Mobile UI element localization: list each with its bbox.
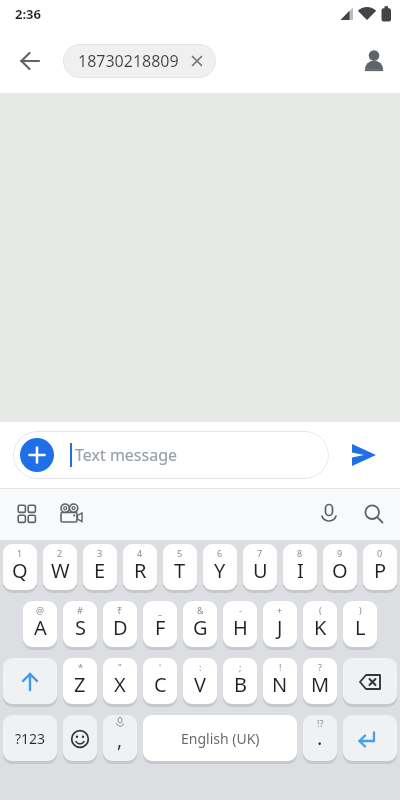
button[interactable] — [350, 441, 378, 469]
staticText: . — [317, 724, 323, 751]
staticText: I — [297, 557, 304, 584]
staticText: * — [78, 661, 83, 673]
button[interactable] — [17, 504, 37, 524]
button[interactable]: 8 — [283, 544, 317, 591]
staticText: 0 — [377, 547, 383, 559]
button[interactable]: # — [63, 601, 97, 648]
staticText: Z — [74, 671, 86, 698]
staticText: O — [332, 557, 348, 584]
button[interactable]: & — [183, 601, 217, 648]
button[interactable]: " — [103, 658, 137, 705]
staticText: ' — [159, 661, 162, 673]
staticText: 3 — [97, 547, 103, 559]
staticText: ) — [359, 604, 362, 616]
staticText: C — [154, 671, 167, 698]
staticText: ; — [239, 661, 242, 673]
staticText: : — [199, 661, 202, 673]
staticText: 7 — [257, 547, 263, 559]
button[interactable]: Text message — [13, 431, 329, 479]
button[interactable] — [363, 503, 385, 525]
staticText: # — [77, 604, 83, 616]
staticText: !? — [317, 717, 324, 729]
button[interactable] — [63, 715, 97, 762]
staticText: Y — [214, 557, 226, 584]
staticText: & — [197, 604, 204, 616]
button[interactable]: , — [103, 715, 137, 762]
button[interactable]: 3 — [83, 544, 117, 591]
staticText: U — [253, 557, 268, 584]
staticText: , — [117, 727, 123, 753]
staticText: P — [374, 557, 387, 584]
staticText: - — [239, 604, 242, 616]
staticText: ?123 — [15, 729, 46, 748]
button[interactable]: - — [223, 601, 257, 648]
button[interactable] — [318, 503, 340, 525]
staticText: G — [193, 614, 208, 641]
staticText: 4 — [137, 547, 143, 559]
button[interactable]: ?123 — [3, 715, 57, 762]
staticText: " — [118, 661, 122, 673]
button[interactable]: 4 — [123, 544, 157, 591]
button[interactable]: ₹ — [103, 601, 137, 648]
staticText: Text message — [75, 444, 178, 466]
staticText: D — [113, 614, 128, 641]
staticText: @ — [36, 604, 45, 616]
button[interactable]: 0 — [363, 544, 397, 591]
button[interactable]: 6 — [203, 544, 237, 591]
button[interactable]: ) — [343, 601, 377, 648]
button[interactable]: ? — [303, 658, 337, 705]
button[interactable]: ( — [303, 601, 337, 648]
staticText: E — [94, 557, 106, 584]
staticText: X — [114, 671, 126, 698]
button[interactable]: 9 — [323, 544, 357, 591]
staticText: English (UK) — [181, 729, 260, 748]
button[interactable]: ' — [143, 658, 177, 705]
button[interactable]: : — [183, 658, 217, 705]
staticText: Q — [12, 557, 28, 584]
button[interactable]: * — [63, 658, 97, 705]
staticText: B — [234, 671, 247, 698]
staticText: 5 — [177, 547, 183, 559]
staticText: ? — [318, 661, 322, 673]
staticText: T — [174, 557, 186, 584]
staticText: ( — [319, 604, 322, 616]
staticText: L — [355, 614, 366, 641]
button[interactable] — [343, 715, 397, 762]
staticText: 9 — [337, 547, 343, 559]
button[interactable]: 5 — [163, 544, 197, 591]
staticText: ! — [279, 661, 282, 673]
staticText: F — [155, 614, 166, 641]
button[interactable]: ; — [223, 658, 257, 705]
staticText: R — [134, 557, 147, 584]
staticText: H — [233, 614, 248, 641]
button[interactable]: 1 — [3, 544, 37, 591]
button[interactable] — [59, 502, 83, 526]
button[interactable] — [343, 658, 397, 705]
button[interactable] — [18, 49, 42, 73]
staticText: 2 — [57, 547, 63, 559]
staticText: 6 — [217, 547, 223, 559]
staticText: S — [75, 614, 86, 641]
button[interactable]: !? — [303, 715, 337, 762]
staticText: 1 — [17, 547, 23, 559]
staticText: + — [277, 604, 283, 616]
button[interactable]: 2 — [43, 544, 77, 591]
button[interactable]: + — [263, 601, 297, 648]
staticText: 2:36 — [15, 5, 41, 23]
staticText: 8 — [297, 547, 303, 559]
button[interactable]: ! — [263, 658, 297, 705]
button[interactable]: 7 — [243, 544, 277, 591]
button[interactable] — [3, 658, 57, 705]
button[interactable]: _ — [143, 601, 177, 648]
staticText: N — [272, 671, 288, 698]
button[interactable] — [361, 48, 387, 74]
staticText: ₹ — [117, 604, 123, 616]
staticText: M — [311, 671, 330, 698]
button[interactable]: @ — [23, 601, 57, 648]
staticText: V — [194, 671, 206, 698]
button[interactable]: English (UK) — [143, 715, 297, 762]
staticText: A — [34, 614, 47, 641]
button[interactable] — [20, 438, 54, 472]
staticText: J — [277, 614, 283, 641]
button[interactable]: 18730218809 — [63, 44, 216, 78]
